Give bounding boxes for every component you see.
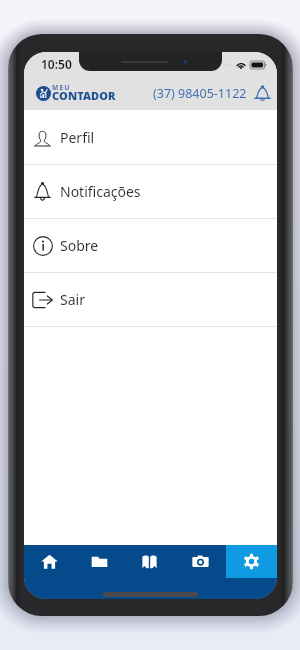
button[interactable]: Home xyxy=(24,545,74,578)
button[interactable]: Book xyxy=(124,545,175,578)
staticText: Sair xyxy=(60,290,85,309)
staticText: Notificações xyxy=(60,182,141,201)
button[interactable]: Sair xyxy=(24,273,277,326)
staticText: MEU xyxy=(52,83,71,92)
button[interactable]: Camera xyxy=(175,545,226,578)
staticText: CONTADOR xyxy=(52,88,116,103)
staticText: 10:50 xyxy=(41,56,72,72)
button[interactable]: Sobre xyxy=(24,219,277,272)
staticText: (37) 98405-1122 xyxy=(153,85,247,102)
button[interactable]: Perfil xyxy=(24,111,277,164)
button[interactable]: Settings xyxy=(226,545,277,578)
button[interactable]: Files xyxy=(74,545,124,578)
button[interactable]: Notificações xyxy=(24,165,277,218)
button[interactable]: Notifications xyxy=(254,85,271,102)
staticText: Sobre xyxy=(60,236,99,255)
staticText: Perfil xyxy=(60,128,95,147)
